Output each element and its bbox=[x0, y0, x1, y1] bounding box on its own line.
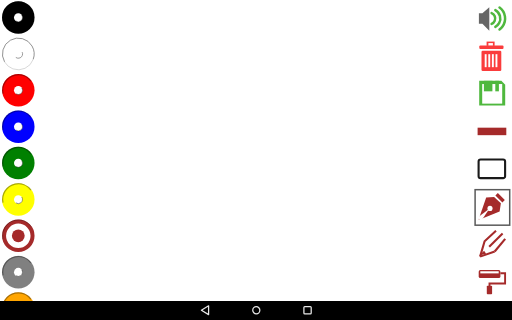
button[interactable]: Back bbox=[180, 301, 231, 320]
button[interactable]: Clear canvas bbox=[474, 37, 512, 74]
button[interactable]: White colour bbox=[0, 36, 36, 72]
button[interactable]: Stroke width bbox=[474, 111, 512, 148]
button[interactable]: Orange colour bbox=[0, 288, 36, 320]
button[interactable]: Save drawing bbox=[474, 74, 512, 111]
button[interactable]: Marker tool bbox=[474, 222, 512, 259]
button[interactable]: Home bbox=[231, 301, 282, 320]
button[interactable]: Grey colour bbox=[0, 252, 36, 288]
button[interactable]: Brown colour bbox=[0, 216, 36, 252]
button[interactable]: Black colour bbox=[0, 0, 36, 36]
button[interactable]: Rectangle tool bbox=[474, 148, 512, 185]
button[interactable]: Blue colour bbox=[0, 108, 36, 144]
button[interactable]: Pen tool bbox=[474, 185, 512, 222]
button[interactable]: Yellow colour bbox=[0, 180, 36, 216]
button[interactable]: Recent apps bbox=[282, 301, 333, 320]
button[interactable]: Paint roller bbox=[474, 259, 512, 296]
button[interactable]: Red colour bbox=[0, 72, 36, 108]
button[interactable]: Sound on bbox=[474, 0, 512, 37]
button[interactable]: Green colour bbox=[0, 144, 36, 180]
